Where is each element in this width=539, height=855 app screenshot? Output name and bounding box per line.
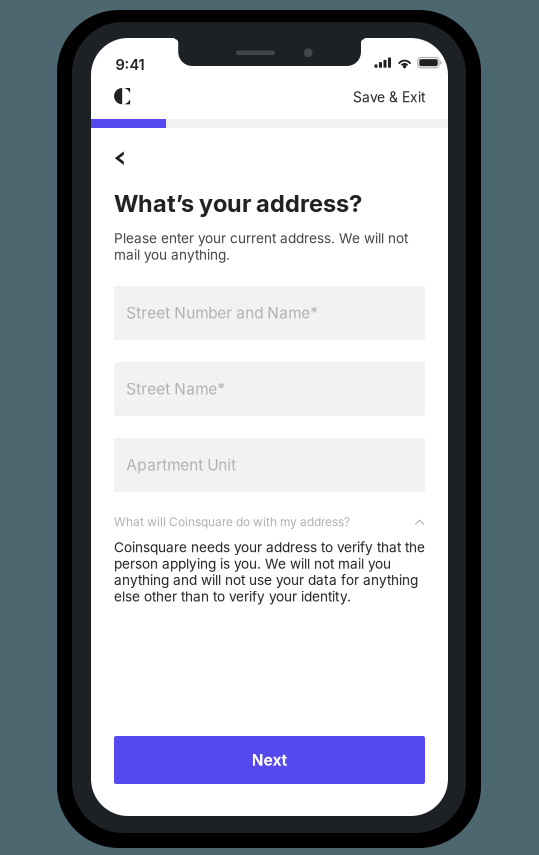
- staticText: Street Name*: [126, 380, 225, 398]
- staticText: Please enter your current address. We wi…: [114, 230, 408, 263]
- staticText: Street Number and Name*: [126, 304, 318, 322]
- staticText: Coinsquare needs your address to verify …: [114, 539, 425, 605]
- button[interactable]: Street Name*: [114, 362, 425, 416]
- button[interactable]: Apartment Unit: [114, 438, 425, 492]
- staticText: Apartment Unit: [126, 456, 236, 474]
- staticText: 9:41: [115, 56, 144, 73]
- staticText: Save & Exit: [353, 89, 426, 106]
- staticText: What’s your address?: [114, 189, 362, 218]
- button[interactable]: Next: [114, 736, 425, 784]
- staticText: Next: [251, 750, 287, 769]
- button[interactable]: What will Coinsquare do with my address?: [114, 509, 425, 535]
- staticText: What will Coinsquare do with my address?: [114, 515, 350, 529]
- button[interactable]: Save & Exit: [347, 83, 432, 112]
- button[interactable]: Street Number and Name*: [114, 286, 425, 340]
- button[interactable]: Back: [106, 142, 133, 174]
